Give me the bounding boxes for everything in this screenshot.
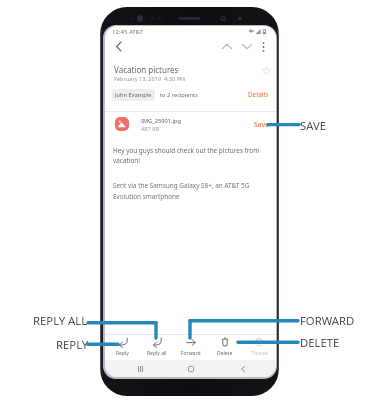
- staticText: REPLY: [56, 337, 89, 352]
- staticText: DELETE: [300, 335, 340, 350]
- button[interactable]: Recent apps: [130, 360, 150, 377]
- staticText: Reply all: [147, 350, 167, 357]
- button[interactable]: Next message: [237, 37, 257, 56]
- button[interactable]: Forward: [174, 334, 208, 360]
- staticText: SAVE: [300, 118, 327, 133]
- staticText: Delete: [217, 350, 233, 357]
- button[interactable]: Previous message: [217, 37, 237, 56]
- button[interactable]: Home: [181, 360, 201, 377]
- staticText: Reply: [116, 350, 129, 357]
- staticText: to 2 recipients: [160, 91, 198, 99]
- staticText: Hey you guys should check out the pictur…: [113, 146, 265, 165]
- staticText: John Example: [115, 91, 152, 99]
- staticText: IMG_25901.jpg: [141, 117, 182, 125]
- button[interactable]: Details: [247, 89, 270, 100]
- staticText: 12:45 AT&T: [112, 28, 143, 36]
- button[interactable]: John Example: [112, 89, 155, 101]
- staticText: Save: [254, 120, 270, 129]
- button[interactable]: Save: [253, 119, 271, 130]
- staticText: Forward: [181, 350, 201, 357]
- button[interactable]: Star message: [258, 62, 274, 78]
- button[interactable]: Thread: [242, 334, 276, 360]
- button[interactable]: Delete: [208, 334, 242, 360]
- staticText: FORWARD: [300, 313, 355, 328]
- button[interactable]: Reply all: [140, 334, 174, 360]
- staticText: Details: [248, 90, 269, 99]
- button[interactable]: IMG_25901.jpg: [105, 112, 276, 136]
- button[interactable]: Back: [108, 37, 129, 56]
- staticText: February 13, 2019 4:30 PM: [114, 75, 186, 83]
- button[interactable]: Reply: [105, 334, 140, 360]
- staticText: Thread: [251, 350, 268, 357]
- staticText: Vacation pictures: [114, 64, 179, 75]
- button[interactable]: More options: [254, 37, 273, 56]
- button[interactable]: Back: [233, 360, 253, 377]
- staticText: 487 KB: [141, 125, 160, 133]
- staticText: REPLY ALL: [33, 313, 88, 328]
- staticText: Sent via the Samsung Galaxy S8+, an AT&T…: [113, 181, 265, 201]
